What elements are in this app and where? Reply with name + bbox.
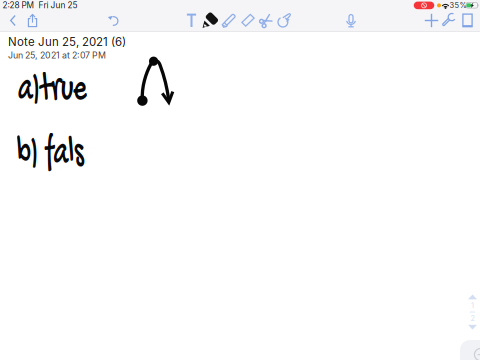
- button[interactable]: Eraser: [238, 10, 258, 31]
- button[interactable]: Highlighter: [219, 10, 239, 31]
- staticText: a)true: [18, 66, 125, 115]
- button[interactable]: Text tool: [181, 10, 201, 31]
- button[interactable]: Add: [421, 10, 441, 31]
- staticText: Note Jun 25, 2021 (6): [8, 35, 126, 49]
- button[interactable]: Back: [3, 10, 23, 31]
- button[interactable]: Dictate: [341, 10, 361, 31]
- staticText: Jun 25, 2021 at 2:07 PM: [8, 50, 106, 60]
- button[interactable]: Notes: [457, 10, 477, 31]
- button[interactable]: Hand: [274, 10, 294, 31]
- staticText: 35%: [449, 1, 466, 10]
- button[interactable]: Lasso: [256, 10, 276, 31]
- button[interactable]: Zoom: [460, 340, 480, 360]
- button[interactable]: Previous page: [467, 294, 477, 300]
- staticText: Fri Jun 25: [38, 0, 77, 10]
- staticText: 2:28 PM: [2, 0, 33, 10]
- button[interactable]: Share: [22, 10, 42, 31]
- staticText: 2: [470, 314, 474, 323]
- staticText: 1: [471, 301, 474, 310]
- button[interactable]: Pen tool: [200, 10, 220, 31]
- staticText: b) fals: [17, 130, 121, 179]
- button[interactable]: Undo: [103, 10, 123, 31]
- button[interactable]: Markup settings: [439, 10, 459, 31]
- button[interactable]: Next page: [467, 324, 477, 330]
